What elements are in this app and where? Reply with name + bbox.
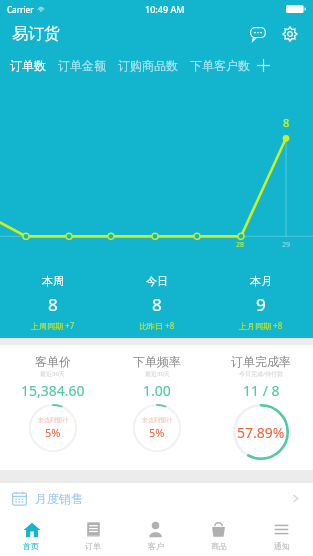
staticText: 11 / 8: [243, 381, 280, 400]
staticText: 8: [283, 115, 290, 130]
staticText: 客单价: [35, 354, 71, 369]
staticText: 今日完成/待付款: [239, 370, 284, 378]
staticText: 今日: [146, 274, 168, 288]
button[interactable]: 通知: [250, 514, 313, 556]
staticText: 订单数: [10, 58, 46, 73]
staticText: 最近30天: [40, 370, 65, 378]
button[interactable]: 客单价: [0, 345, 105, 470]
staticText: 28: [236, 240, 245, 250]
button[interactable]: 本周: [0, 265, 105, 338]
staticText: 29: [282, 240, 291, 250]
staticText: 订购商品数: [118, 58, 178, 73]
staticText: 客户: [148, 541, 164, 551]
button[interactable]: 下单客户数: [190, 50, 250, 80]
button[interactable]: 订购商品数: [118, 50, 178, 80]
button[interactable]: 首页: [0, 514, 62, 556]
staticText: Carrier: [7, 4, 34, 15]
staticText: 首页: [23, 541, 39, 551]
button[interactable]: 客户: [124, 514, 187, 556]
staticText: 上月同期 +8: [239, 320, 283, 331]
staticText: 57.89%: [237, 423, 285, 442]
staticText: 比昨日 +8: [139, 320, 175, 331]
staticText: 5%: [149, 425, 165, 440]
staticText: 本周: [42, 274, 64, 288]
staticText: 9: [256, 293, 266, 316]
button[interactable]: Add metric: [250, 50, 276, 80]
button[interactable]: 今日: [105, 265, 209, 338]
button[interactable]: 订单数: [10, 50, 46, 80]
staticText: 订单金额: [58, 58, 106, 73]
staticText: 月度销售: [35, 491, 83, 506]
staticText: 1.00: [143, 381, 171, 400]
staticText: 下单频率: [133, 354, 181, 369]
staticText: 下单客户数: [190, 58, 250, 73]
button[interactable]: Messages: [245, 21, 271, 47]
button[interactable]: Settings: [277, 21, 303, 47]
button[interactable]: 订单: [62, 514, 124, 556]
staticText: 最近30天: [145, 370, 170, 378]
staticText: 商品: [211, 541, 227, 551]
staticText: 订单: [85, 541, 101, 551]
staticText: 10:49 AM: [145, 3, 185, 15]
staticText: 易订货: [12, 24, 60, 44]
staticText: 5%: [45, 425, 61, 440]
staticText: 未达到预计: [38, 416, 68, 424]
button[interactable]: 订单金额: [58, 50, 106, 80]
staticText: 15,384.60: [21, 381, 85, 400]
staticText: 通知: [274, 541, 290, 551]
staticText: 8: [152, 293, 162, 316]
staticText: 本月: [250, 274, 272, 288]
staticText: 未达到预计: [142, 416, 172, 424]
staticText: 订单完成率: [231, 354, 291, 369]
staticText: 8: [48, 293, 58, 316]
button[interactable]: 下单频率: [105, 345, 209, 470]
button[interactable]: 本月: [209, 265, 313, 338]
button[interactable]: 商品: [187, 514, 250, 556]
staticText: 上周同期 +7: [31, 320, 75, 331]
button[interactable]: 订单完成率: [209, 345, 313, 470]
button[interactable]: 月度销售: [0, 483, 313, 514]
